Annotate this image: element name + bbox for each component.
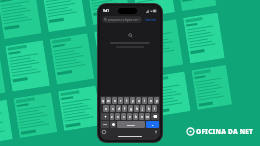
button[interactable]: Emoji [110,121,116,128]
staticText: z [111,115,113,119]
staticText: ir [152,123,154,126]
other: Microphone [138,18,140,21]
button[interactable]: a [103,105,109,112]
staticText: j [142,107,143,111]
staticText: a [105,107,107,111]
button[interactable]: l [152,105,157,112]
button[interactable]: s [110,105,115,112]
staticText: n [141,115,143,119]
staticText: y [132,99,134,103]
staticText: 123 [103,123,107,126]
staticText: d [118,107,120,111]
button[interactable]: Delete [151,113,159,120]
staticText: h [136,107,138,111]
button[interactable]: 123 [101,121,109,128]
button[interactable]: w [106,97,111,104]
staticText: OFICINA DA NET [196,127,254,136]
staticText: g [130,107,132,111]
button[interactable]: d [116,105,121,112]
button[interactable]: Cancelar [144,17,158,23]
staticText: k [148,107,150,111]
staticText: espaço [127,123,135,126]
button[interactable]: p [154,97,159,104]
staticText: e [114,99,116,103]
staticText: i [144,99,145,103]
button[interactable]: f [122,105,127,112]
button[interactable]: q [101,97,105,104]
button[interactable]: Change keyboard [102,130,106,134]
staticText: b [135,115,137,119]
staticText: t [126,99,128,103]
staticText: s [112,107,114,111]
button[interactable]: o [148,97,153,104]
button[interactable]: x [115,113,120,120]
button[interactable]: espaço [117,121,145,128]
staticText: c [123,115,125,119]
staticText: q [102,99,104,103]
button[interactable]: c [121,113,126,120]
button[interactable]: r [118,97,123,104]
button[interactable]: z [110,113,114,120]
staticText: f [124,107,126,111]
button[interactable]: i [142,97,147,104]
staticText: v [129,115,131,119]
staticText: u [138,99,140,103]
staticText: p [156,99,158,103]
staticText: o [150,99,152,103]
staticText: x [117,115,119,119]
button[interactable]: j [140,105,145,112]
button[interactable]: n [139,113,144,120]
staticText: m [146,115,149,119]
staticText: pesquisar ou digitar site [108,18,138,22]
button[interactable]: ir [146,121,159,128]
button[interactable]: b [133,113,138,120]
button[interactable]: k [146,105,151,112]
staticText: 9:41 [103,9,109,13]
button[interactable]: Dictation [154,130,158,134]
other: Search [128,33,133,38]
staticText: r [120,99,122,103]
button[interactable]: pesquisar ou digitar site [102,16,142,23]
button[interactable]: e [112,97,117,104]
staticText: Cancelar [145,18,157,22]
button[interactable]: v [127,113,132,120]
staticText: l [154,107,155,111]
button[interactable]: m [145,113,150,120]
button[interactable]: u [136,97,141,104]
button[interactable]: h [134,105,139,112]
staticText: w [107,99,110,103]
button[interactable]: y [130,97,135,104]
button[interactable]: g [128,105,133,112]
button[interactable]: t [124,97,129,104]
button[interactable]: Shift [101,113,109,120]
